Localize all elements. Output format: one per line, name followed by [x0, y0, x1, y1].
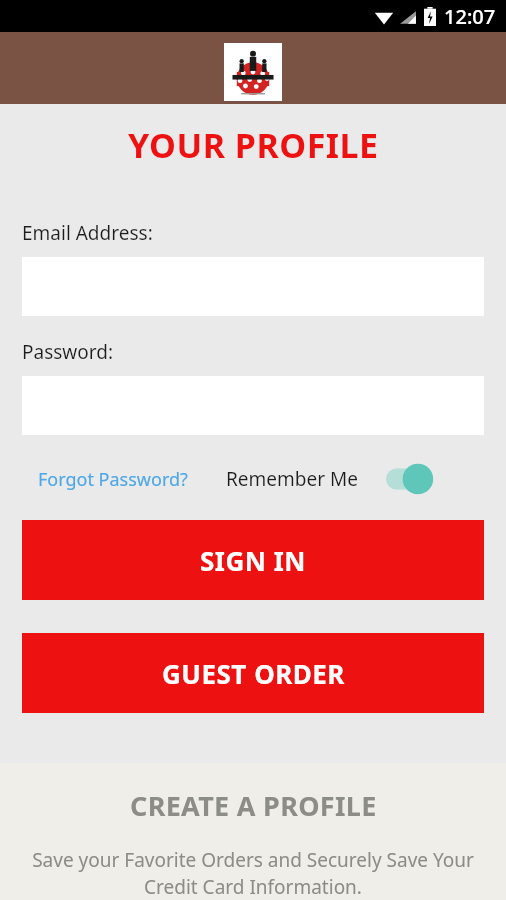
staticText: Password:	[22, 339, 114, 365]
button[interactable]: Forgot Password?	[38, 467, 188, 492]
staticText: GUEST ORDER	[162, 656, 345, 691]
button[interactable]: GUEST ORDER	[22, 633, 484, 713]
staticText: Remember Me	[226, 466, 358, 492]
button[interactable]: CREATE A PROFILE	[0, 783, 506, 828]
staticText: Forgot Password?	[38, 467, 188, 492]
staticText: Email Address:	[22, 220, 153, 246]
staticText: SIGN IN	[200, 543, 306, 578]
staticText: CREATE A PROFILE	[130, 787, 377, 824]
button[interactable]: SIGN IN	[22, 520, 484, 600]
button[interactable]: Remember Me toggle	[386, 462, 442, 496]
staticText: YOUR PROFILE	[128, 122, 379, 168]
staticText: Save your Favorite Orders and Securely S…	[22, 847, 484, 900]
staticText: 12:07	[444, 3, 496, 30]
button[interactable]: Baker's Pizza home	[224, 43, 282, 101]
